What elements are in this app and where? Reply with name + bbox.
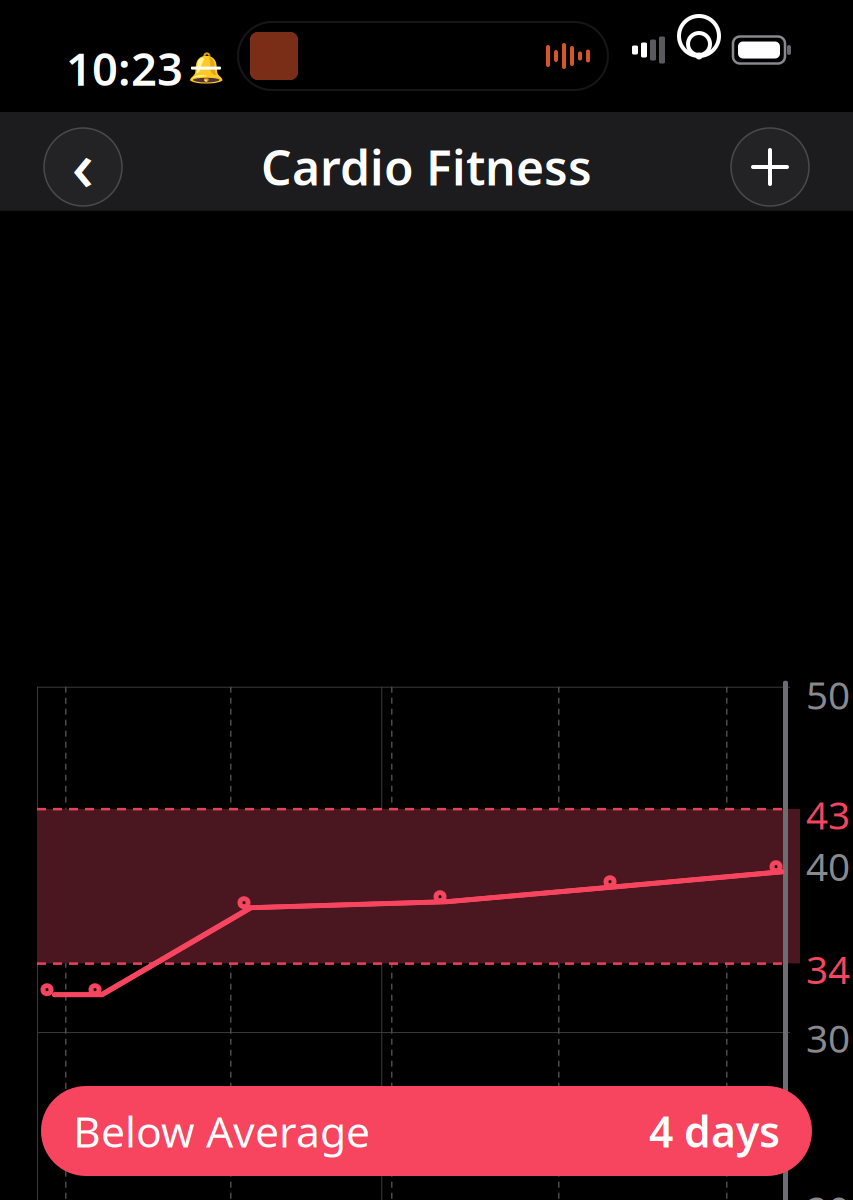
staticText: 20	[806, 1184, 850, 1200]
staticText: 🔔	[187, 51, 224, 85]
staticText: 4 days	[649, 1103, 780, 1159]
staticText: ‹	[71, 118, 94, 210]
button[interactable]: Below Average	[41, 1086, 812, 1176]
staticText: 43	[806, 789, 850, 840]
staticText: Below Average	[73, 1103, 370, 1159]
staticText: 30	[806, 1012, 850, 1063]
button[interactable]: Back	[44, 128, 122, 206]
staticText: Cardio Fitness	[261, 135, 592, 199]
staticText: 10:23	[66, 38, 183, 98]
staticText: 34	[806, 943, 850, 995]
staticText: 50	[806, 669, 850, 720]
button[interactable]: Add	[731, 128, 809, 206]
staticText: 40	[806, 840, 850, 892]
